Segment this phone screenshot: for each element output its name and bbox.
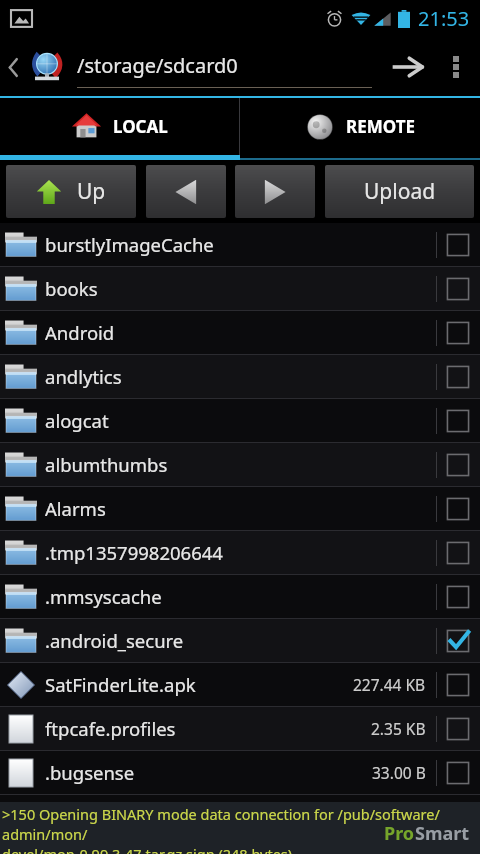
button[interactable]: Not selected <box>444 407 472 435</box>
button[interactable]: REMOTE <box>240 98 480 155</box>
staticText: albumthumbs <box>45 452 168 477</box>
button[interactable]: Back <box>3 43 23 91</box>
staticText: >150 Opening BINARY mode data connection… <box>2 804 480 844</box>
button[interactable]: SatFinderLite.apk <box>0 663 480 706</box>
button[interactable]: Not selected <box>444 715 472 743</box>
staticText: 227.44 KB <box>353 674 426 695</box>
button[interactable]: Go <box>380 40 436 94</box>
button[interactable]: More options <box>436 40 476 94</box>
button[interactable]: Selected <box>444 627 472 655</box>
button[interactable]: alogcat <box>0 399 480 442</box>
button[interactable]: /storage/sdcard0 <box>77 43 372 87</box>
staticText: andlytics <box>45 364 122 389</box>
button[interactable]: Not selected <box>444 275 472 303</box>
staticText: alogcat <box>45 408 109 433</box>
staticText: Alarms <box>45 496 106 521</box>
button[interactable]: Not selected <box>444 231 472 259</box>
staticText: 2.35 KB <box>371 718 426 739</box>
button[interactable]: .tmp1357998206644 <box>0 531 480 574</box>
button[interactable]: Previous <box>146 165 226 218</box>
button[interactable]: Android <box>0 311 480 354</box>
button[interactable]: Not selected <box>444 539 472 567</box>
staticText: SatFinderLite.apk <box>45 672 196 697</box>
button[interactable]: Next <box>235 165 315 218</box>
staticText: Smart <box>415 821 470 846</box>
button[interactable]: Not selected <box>444 495 472 523</box>
button[interactable]: books <box>0 267 480 310</box>
button[interactable]: albumthumbs <box>0 443 480 486</box>
button[interactable]: Alarms <box>0 487 480 530</box>
staticText: Pro <box>384 821 415 846</box>
staticText: Upload <box>364 177 436 206</box>
button[interactable]: Not selected <box>444 363 472 391</box>
button[interactable]: Not selected <box>444 319 472 347</box>
staticText: burstlyImageCache <box>45 232 214 257</box>
staticText: .bugsense <box>45 760 135 785</box>
staticText: /storage/sdcard0 <box>77 52 238 79</box>
button[interactable]: Up <box>6 165 136 218</box>
staticText: REMOTE <box>346 115 415 138</box>
staticText: 33.00 B <box>372 762 426 783</box>
staticText: LOCAL <box>113 115 168 138</box>
staticText: .tmp1357998206644 <box>45 540 223 565</box>
staticText: 21:53 <box>418 5 470 32</box>
button[interactable]: Upload <box>325 165 474 218</box>
staticText: Android <box>45 320 115 345</box>
staticText: .mmsyscache <box>45 584 162 609</box>
staticText: books <box>45 276 98 301</box>
button[interactable]: Not selected <box>444 671 472 699</box>
button[interactable]: LOCAL <box>0 98 239 155</box>
button[interactable]: andlytics <box>0 355 480 398</box>
button[interactable]: App icon <box>23 43 71 91</box>
staticText: .android_secure <box>45 628 184 653</box>
button[interactable]: ftpcafe.profiles <box>0 707 480 750</box>
staticText: ftpcafe.profiles <box>45 716 176 741</box>
button[interactable]: burstlyImageCache <box>0 223 480 266</box>
button[interactable]: .android_secure <box>0 619 480 662</box>
button[interactable]: Not selected <box>444 583 472 611</box>
button[interactable]: Not selected <box>444 759 472 787</box>
button[interactable]: .bugsense <box>0 751 480 794</box>
staticText: devel/mon-0.99.3-47.tar.gz.sign (248 byt… <box>2 844 297 854</box>
staticText: Up <box>77 177 106 206</box>
button[interactable]: Not selected <box>444 451 472 479</box>
button[interactable]: .mmsyscache <box>0 575 480 618</box>
